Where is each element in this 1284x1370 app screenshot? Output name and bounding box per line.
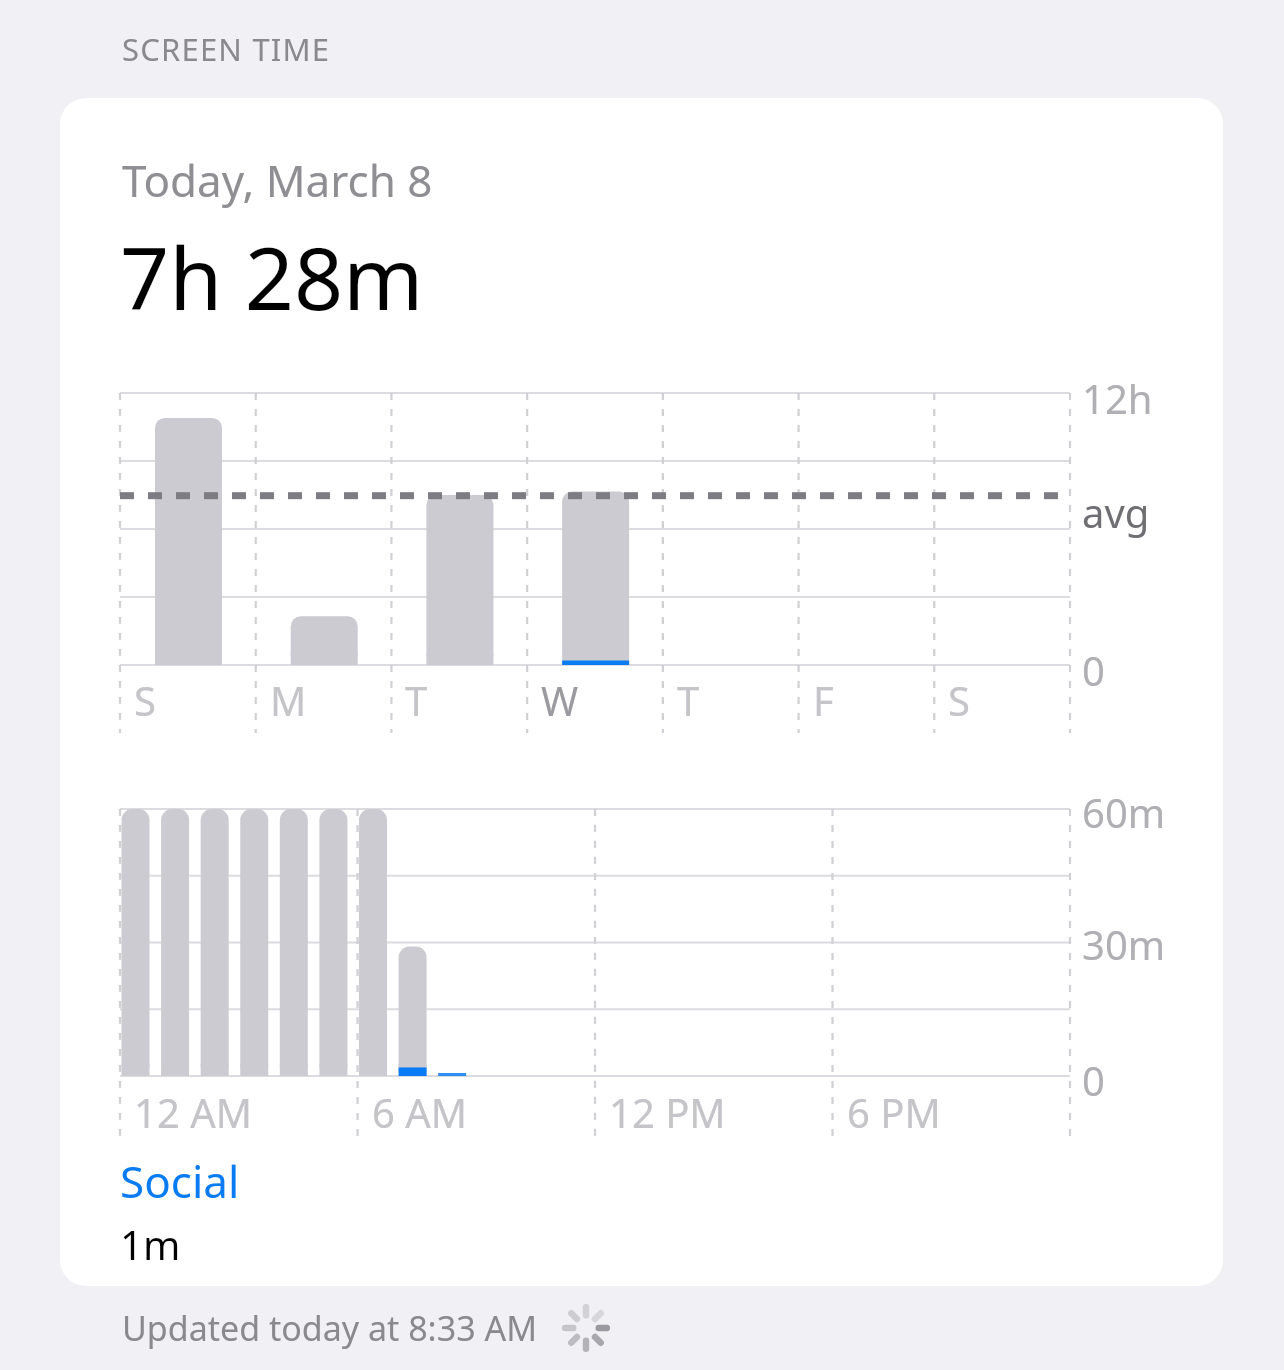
button[interactable]: Social [120, 1151, 240, 1271]
button[interactable]: 12h [60, 369, 1223, 719]
staticText: SCREEN TIME [122, 28, 331, 70]
staticText: T [405, 673, 428, 727]
staticText: W [541, 673, 579, 727]
staticText: Updated today at 8:33 AM [122, 1305, 538, 1351]
staticText: 6 AM [372, 1085, 468, 1139]
staticText: 12 PM [609, 1085, 726, 1139]
staticText: 0 [1082, 1053, 1105, 1107]
staticText: M [270, 673, 307, 727]
staticText: 7h 28m [120, 218, 424, 335]
other: Loading [558, 1300, 614, 1356]
staticText: 12h [1082, 371, 1153, 425]
staticText: S [948, 673, 970, 727]
staticText: Today, March 8 [122, 150, 433, 210]
staticText: avg [1082, 485, 1150, 539]
staticText: 30m [1082, 917, 1166, 971]
staticText: T [677, 673, 700, 727]
staticText: 12 AM [134, 1085, 252, 1139]
button[interactable]: SCREEN TIME [0, 0, 1284, 98]
staticText: Social [120, 1151, 240, 1211]
button[interactable]: Today, March 8 [60, 98, 1223, 1286]
staticText: 0 [1082, 643, 1105, 697]
staticText: 60m [1082, 785, 1166, 839]
staticText: 1m [120, 1217, 181, 1271]
staticText: S [134, 673, 156, 727]
staticText: F [813, 673, 834, 727]
staticText: 6 PM [847, 1085, 941, 1139]
button[interactable]: 60m [60, 789, 1223, 1139]
